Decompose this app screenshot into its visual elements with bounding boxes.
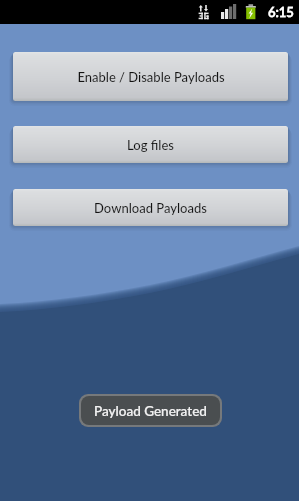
staticText: Enable / Disable Payloads (77, 69, 225, 85)
button[interactable]: Log files (12, 126, 289, 166)
staticText: Log files (127, 137, 174, 153)
staticText: 6:15 (268, 4, 294, 20)
button[interactable]: Download Payloads (12, 189, 289, 229)
staticText: Download Payloads (94, 200, 207, 216)
button[interactable]: Enable / Disable Payloads (12, 52, 289, 104)
staticText: Payload Generated (94, 403, 207, 419)
